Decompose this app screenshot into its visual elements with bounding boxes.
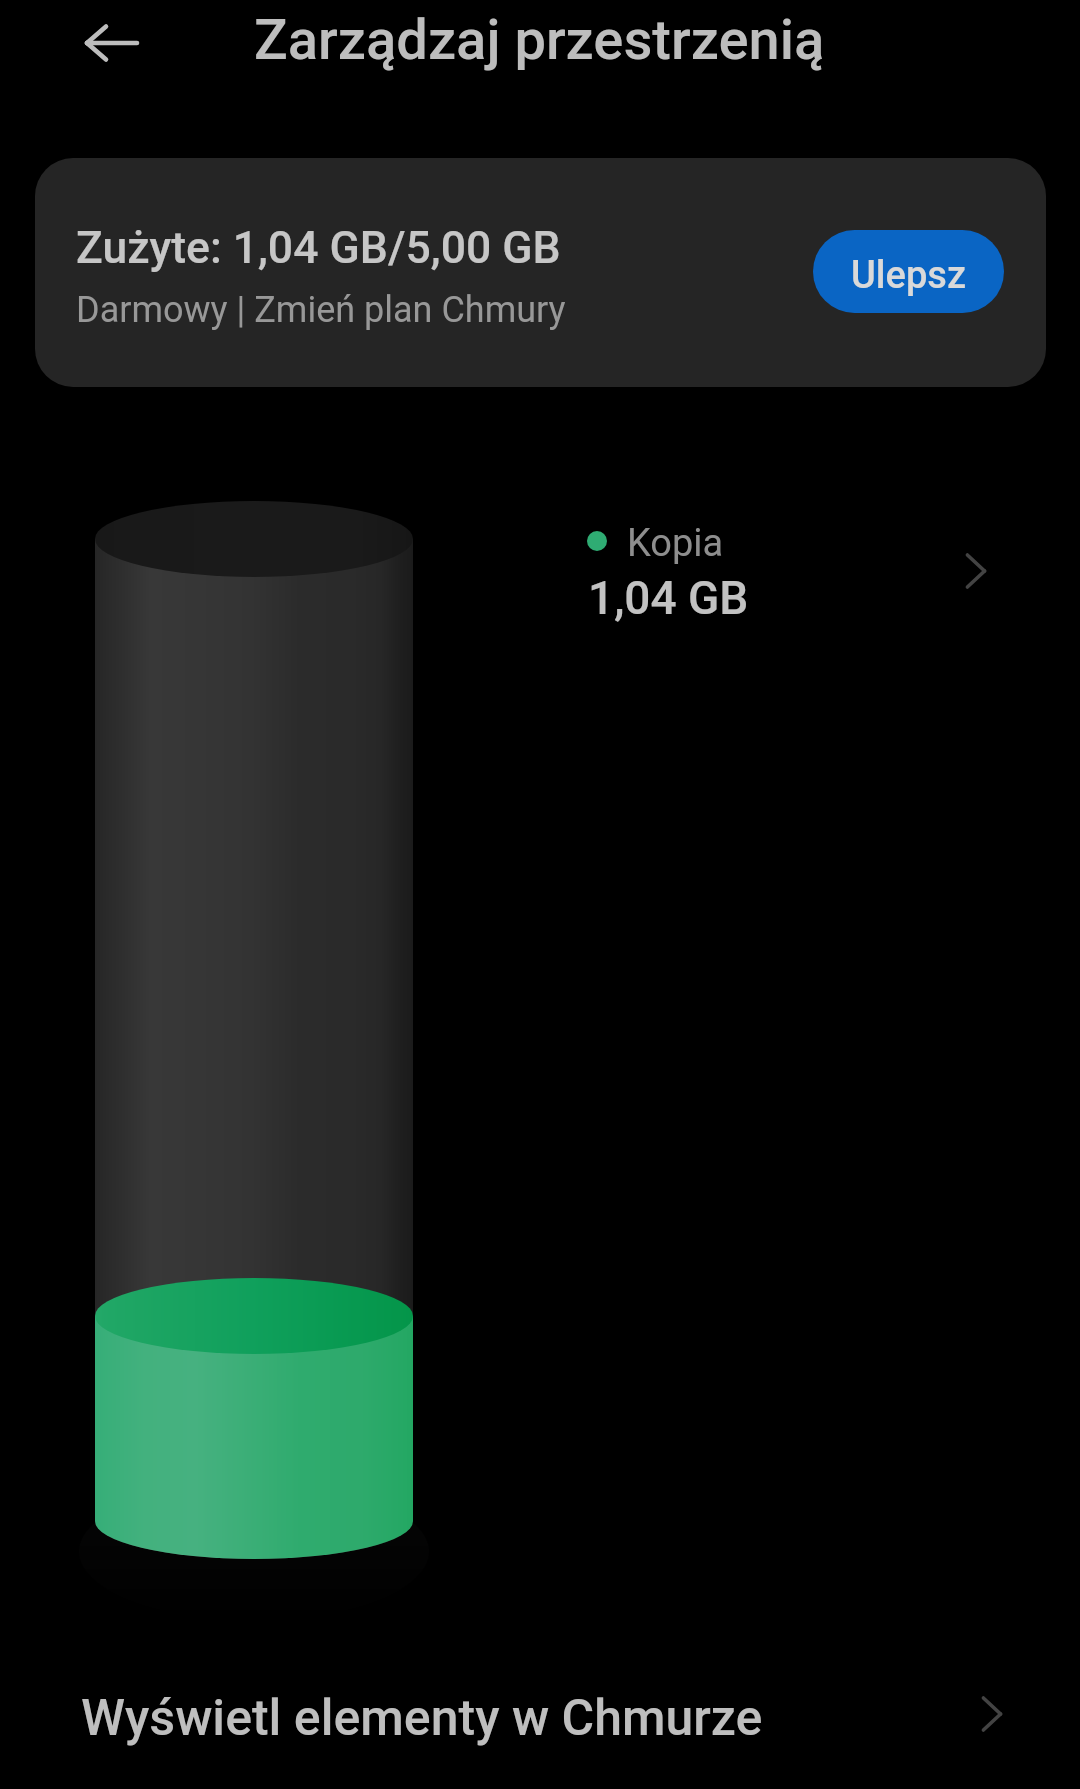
button[interactable]: Zużyte: 1,04 GB/5,00 GB	[35, 158, 1046, 387]
staticText: Zużyte: 1,04 GB/5,00 GB	[76, 222, 561, 274]
staticText: Darmowy | Zmień plan Chmury	[76, 289, 566, 331]
button[interactable]: Back	[57, 0, 157, 93]
staticText: Kopia	[627, 521, 724, 566]
button[interactable]: Kopia	[560, 500, 1030, 640]
staticText: 1,04 GB	[588, 571, 749, 625]
staticText: Ulepsz	[851, 253, 967, 298]
button[interactable]: Wyświetl elementy w Chmurze	[0, 1648, 1080, 1789]
button[interactable]: Ulepsz	[813, 230, 1004, 313]
staticText: Zarządzaj przestrzenią	[254, 7, 825, 73]
staticText: Wyświetl elementy w Chmurze	[81, 1689, 763, 1748]
